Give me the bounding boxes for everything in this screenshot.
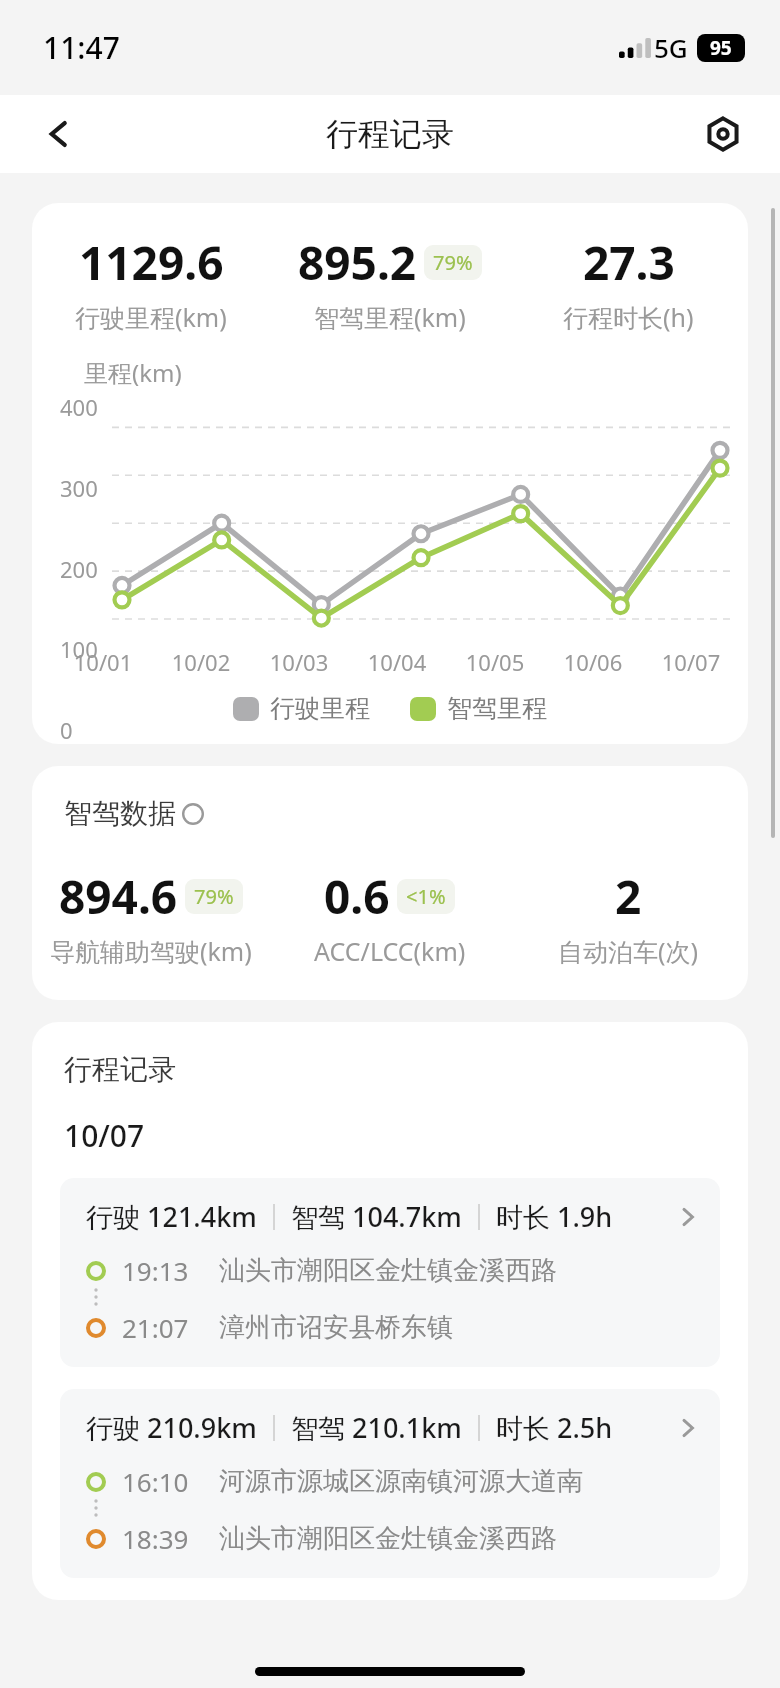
staticText: 11:47 (43, 27, 120, 68)
staticText: 智驾里程(km) (314, 300, 466, 334)
staticText: 漳州市诏安县桥东镇 (219, 1311, 453, 1344)
staticText: 19:13 (122, 1253, 189, 1288)
staticText: 时长 2.5h (496, 1409, 613, 1446)
staticText: 95 (710, 35, 732, 61)
staticText: 0 (60, 715, 73, 744)
staticText: 10/05 (446, 647, 544, 677)
staticText: 300 (60, 473, 98, 503)
button[interactable]: 智驾数据 (64, 796, 204, 831)
staticText: 16:10 (122, 1464, 189, 1499)
staticText: 400 (60, 392, 98, 422)
staticText: 智驾 104.7km (291, 1198, 462, 1235)
button[interactable]: Back (30, 105, 88, 163)
staticText: 100 (60, 634, 98, 664)
button[interactable]: Settings (694, 105, 752, 163)
staticText: 自动泊车(次) (558, 934, 699, 968)
staticText: 895.2 (298, 231, 417, 294)
staticText: 894.6 (59, 865, 178, 928)
button[interactable]: 行驶里程 (233, 693, 370, 724)
staticText: 汕头市潮阳区金灶镇金溪西路 (219, 1522, 557, 1555)
staticText: 导航辅助驾驶(km) (50, 934, 252, 968)
staticText: 行程记录 (64, 1052, 176, 1087)
staticText: 1129.6 (79, 231, 224, 294)
button[interactable]: 智驾里程 (410, 693, 547, 724)
staticText: 智驾里程 (447, 693, 547, 724)
staticText: 10/04 (348, 647, 446, 677)
staticText: 行程记录 (326, 114, 454, 154)
staticText: 行驶里程 (270, 693, 370, 724)
button[interactable]: 行驶 121.4km (60, 1178, 720, 1367)
staticText: 行驶 210.9km (86, 1409, 257, 1446)
staticText: 10/07 (642, 647, 740, 677)
staticText: 21:07 (122, 1310, 189, 1345)
staticText: 27.3 (583, 231, 675, 294)
staticText: 汕头市潮阳区金灶镇金溪西路 (219, 1254, 557, 1287)
staticText: 10/06 (544, 647, 642, 677)
staticText: 0.6 (324, 865, 390, 928)
staticText: 行程时长(h) (563, 300, 694, 334)
staticText: 里程(km) (84, 356, 182, 389)
staticText: 行驶里程(km) (75, 300, 227, 334)
staticText: 智驾数据 (64, 796, 176, 831)
staticText: 10/03 (250, 647, 348, 677)
staticText: 10/01 (54, 647, 152, 677)
staticText: 智驾 210.1km (291, 1409, 462, 1446)
staticText: 河源市源城区源南镇河源大道南 (219, 1465, 583, 1498)
staticText: 10/02 (152, 647, 250, 677)
staticText: 行驶 121.4km (86, 1198, 257, 1235)
staticText: 2 (615, 865, 642, 928)
staticText: 200 (60, 554, 98, 584)
staticText: 时长 1.9h (496, 1198, 613, 1235)
staticText: 10/07 (64, 1115, 145, 1156)
staticText: 18:39 (122, 1521, 189, 1556)
staticText: 5G (654, 30, 688, 65)
staticText: 79% (433, 249, 473, 276)
staticText: ACC/LCC(km) (314, 934, 466, 968)
button[interactable]: 行驶 210.9km (60, 1389, 720, 1578)
staticText: 79% (194, 883, 234, 910)
staticText: <1% (406, 883, 446, 910)
